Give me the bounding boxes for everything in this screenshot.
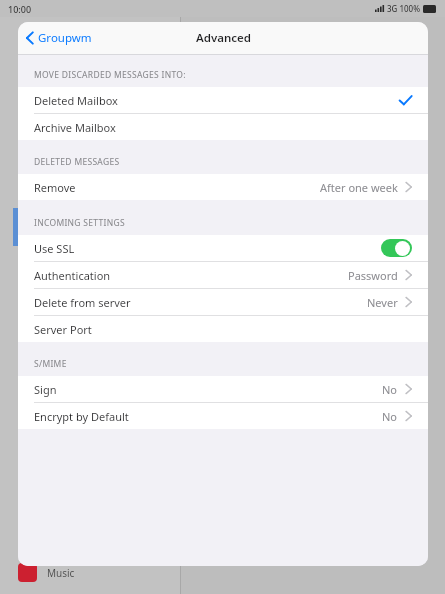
button[interactable]: Remove: [18, 174, 428, 200]
staticText: MOVE DISCARDED MESSAGES INTO:: [34, 69, 186, 81]
button[interactable]: Server Port: [18, 316, 428, 342]
staticText: DELETED MESSAGES: [34, 156, 120, 168]
button[interactable]: Encrypt by Default: [18, 403, 428, 429]
button[interactable]: Archive Mailbox: [18, 114, 428, 140]
button[interactable]: Groupwm: [26, 30, 92, 46]
staticText: Never: [367, 295, 398, 310]
button[interactable]: Delete from server: [18, 289, 428, 316]
staticText: Deleted Mailbox: [34, 93, 118, 108]
staticText: No: [382, 382, 398, 397]
staticText: Archive Mailbox: [34, 120, 116, 135]
staticText: INCOMING SETTINGS: [34, 217, 125, 229]
button[interactable]: Use SSL: [18, 235, 428, 262]
staticText: Use SSL: [34, 241, 75, 256]
staticText: 10:00: [8, 3, 32, 15]
staticText: Encrypt by Default: [34, 409, 129, 424]
staticText: 3G 100%: [387, 3, 421, 14]
staticText: Music: [47, 566, 75, 580]
button[interactable]: Sign: [18, 376, 428, 403]
button[interactable]: Use SSL toggle: [381, 239, 412, 257]
staticText: Password: [348, 268, 398, 283]
staticText: Remove: [34, 180, 76, 195]
staticText: Advanced: [196, 30, 251, 46]
staticText: Delete from server: [34, 295, 131, 310]
staticText: Sign: [34, 382, 57, 397]
staticText: Server Port: [34, 322, 92, 337]
staticText: After one week: [320, 180, 398, 195]
staticText: Authentication: [34, 268, 111, 283]
button[interactable]: Authentication: [18, 262, 428, 289]
staticText: No: [382, 409, 398, 424]
button[interactable]: Deleted Mailbox: [18, 87, 428, 114]
staticText: S/MIME: [34, 358, 67, 370]
staticText: Groupwm: [38, 30, 92, 46]
